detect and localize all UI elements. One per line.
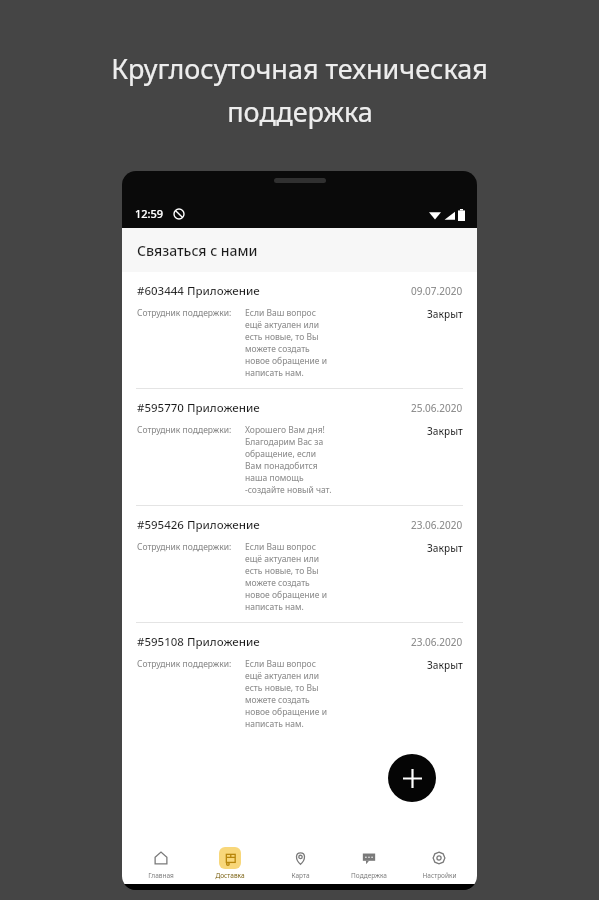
staticText: Сотрудник поддержки:	[137, 658, 237, 670]
button[interactable]: #595426 Приложение	[122, 506, 477, 622]
button[interactable]: Доставка	[199, 844, 261, 883]
staticText: Если Ваш вопрос ещё актуален или есть но…	[245, 307, 333, 379]
staticText: 12:59	[135, 206, 164, 221]
staticText: Закрыт	[427, 541, 463, 555]
staticText: Настройки	[422, 871, 457, 880]
staticText: Если Ваш вопрос ещё актуален или есть но…	[245, 541, 333, 613]
button[interactable]: Главная	[130, 844, 192, 883]
staticText: 23.06.2020	[411, 518, 463, 532]
staticText: Главная	[148, 871, 174, 880]
button[interactable]: Настройки	[408, 844, 470, 883]
staticText: #595108 Приложение	[137, 634, 260, 650]
staticText: 09.07.2020	[411, 284, 463, 298]
button[interactable]: #595770 Приложение	[122, 389, 477, 505]
staticText: Круглосуточная техническая	[111, 50, 488, 87]
staticText: Доставка	[215, 871, 245, 880]
staticText: Поддержка	[351, 871, 387, 880]
button[interactable]: Новое обращение	[388, 754, 436, 802]
staticText: #603444 Приложение	[137, 283, 260, 299]
staticText: Если Ваш вопрос ещё актуален или есть но…	[245, 658, 333, 730]
staticText: Связаться с нами	[137, 241, 258, 260]
staticText: Закрыт	[427, 658, 463, 672]
button[interactable]: #595108 Приложение	[122, 623, 477, 739]
staticText: Сотрудник поддержки:	[137, 424, 237, 436]
staticText: Сотрудник поддержки:	[137, 541, 237, 553]
staticText: Закрыт	[427, 424, 463, 438]
button[interactable]: #603444 Приложение	[122, 272, 477, 388]
staticText: Закрыт	[427, 307, 463, 321]
button[interactable]: Поддержка	[338, 844, 400, 883]
staticText: Сотрудник поддержки:	[137, 307, 237, 319]
staticText: 25.06.2020	[411, 401, 463, 415]
staticText: поддержка	[227, 93, 373, 130]
staticText: Хорошего Вам дня! Благодарим Вас за обра…	[245, 424, 333, 496]
staticText: 23.06.2020	[411, 635, 463, 649]
button[interactable]: Карта	[269, 844, 331, 883]
staticText: #595770 Приложение	[137, 400, 260, 416]
staticText: Карта	[291, 871, 310, 880]
staticText: #595426 Приложение	[137, 517, 260, 533]
